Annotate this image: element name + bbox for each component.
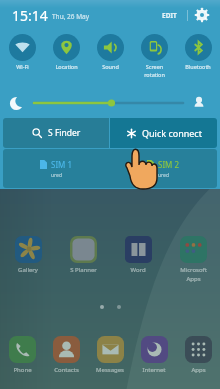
button[interactable]: Quick connect bbox=[110, 118, 217, 148]
button[interactable]: SIM 1 bbox=[3, 149, 110, 188]
button[interactable]: Phone bbox=[0, 336, 48, 374]
staticText: Gallery bbox=[18, 266, 38, 274]
button[interactable]: Bluetooth bbox=[176, 30, 220, 82]
button[interactable]: Auto brightness bbox=[192, 96, 206, 110]
staticText: Thu, 26 May bbox=[52, 12, 90, 21]
button[interactable]: Contacts bbox=[40, 336, 92, 374]
staticText: EDIT bbox=[162, 11, 177, 20]
button[interactable]: Location bbox=[44, 30, 88, 82]
staticText: Microsoft Apps bbox=[180, 266, 207, 283]
button[interactable]: Messages bbox=[84, 336, 136, 374]
button[interactable]: Settings bbox=[195, 8, 209, 22]
staticText: Phone bbox=[13, 366, 32, 374]
staticText: 15:14 bbox=[12, 6, 48, 25]
button[interactable]: Screen rotation bbox=[132, 30, 176, 82]
staticText: Wi-Fi bbox=[16, 63, 29, 70]
staticText: S Finder bbox=[48, 127, 81, 139]
button[interactable]: EDIT bbox=[159, 6, 180, 25]
staticText: S Planner bbox=[70, 266, 97, 274]
staticText: Internet bbox=[142, 366, 166, 374]
staticText: Messages bbox=[96, 366, 124, 374]
staticText: SIM 2 bbox=[158, 159, 180, 170]
button[interactable]: Apps bbox=[172, 336, 220, 374]
staticText: ured bbox=[51, 172, 62, 179]
staticText: Word bbox=[130, 266, 146, 274]
staticText: Contacts bbox=[54, 366, 79, 374]
staticText: Quick connect bbox=[142, 127, 202, 139]
staticText: Screen rotation bbox=[144, 63, 165, 79]
staticText: Location bbox=[55, 63, 78, 70]
button[interactable]: Wi-Fi bbox=[0, 30, 44, 82]
staticText: SIM 1 bbox=[51, 159, 73, 170]
button[interactable]: Microsoft Apps bbox=[167, 236, 219, 283]
button[interactable]: S Finder bbox=[3, 118, 109, 148]
button[interactable]: Sound bbox=[88, 30, 132, 82]
staticText: Sound bbox=[102, 63, 119, 70]
button[interactable]: Word bbox=[112, 236, 164, 274]
button[interactable]: SIM 2 bbox=[110, 149, 217, 188]
staticText: Apps bbox=[191, 366, 206, 374]
button[interactable]: S Planner bbox=[57, 236, 109, 274]
button[interactable]: Gallery bbox=[2, 236, 54, 274]
button[interactable]: Internet bbox=[128, 336, 180, 374]
staticText: ured bbox=[158, 172, 169, 179]
staticText: Bluetooth bbox=[185, 63, 211, 70]
